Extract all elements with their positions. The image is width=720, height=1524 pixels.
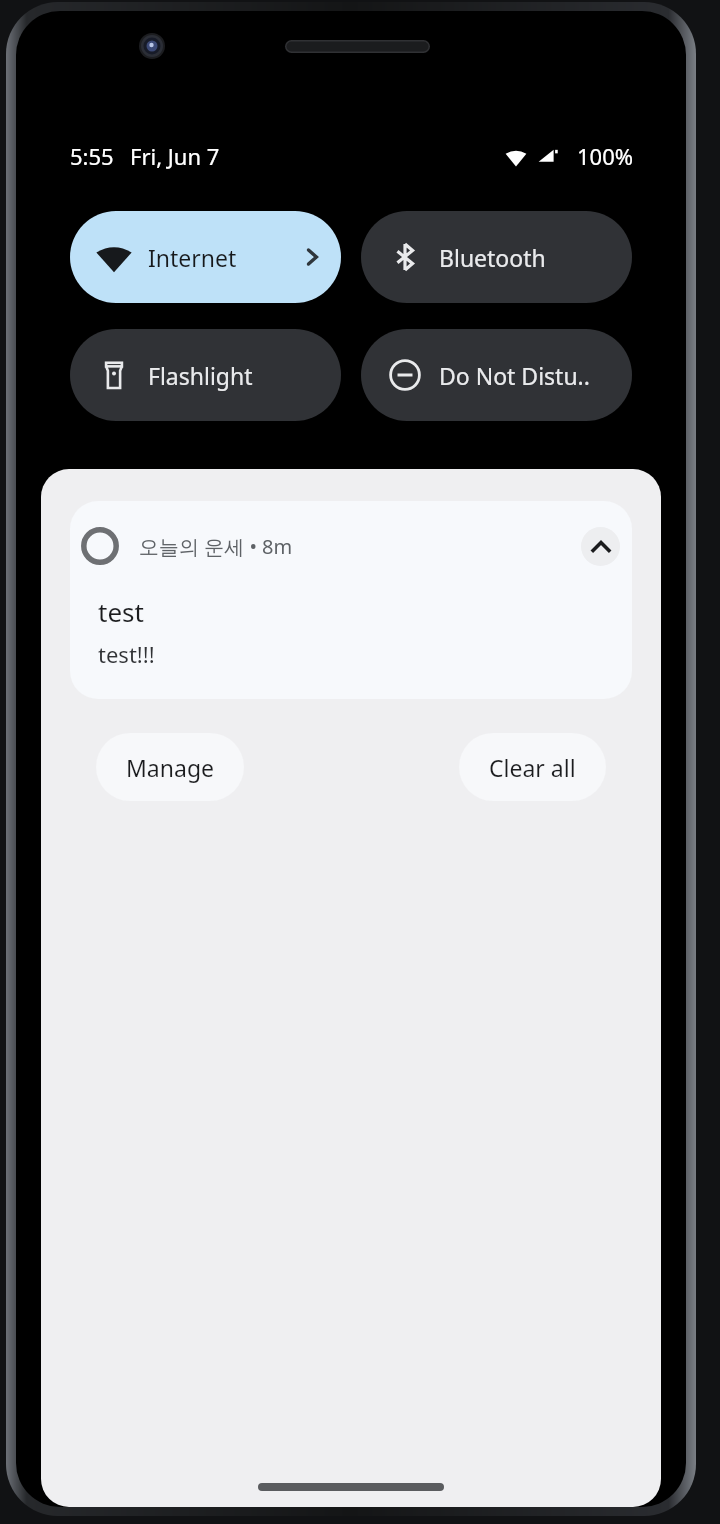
button[interactable]: Internet <box>70 211 341 303</box>
button[interactable]: Manage <box>96 733 244 801</box>
staticText: 오늘의 운세 • 8m <box>139 533 293 560</box>
staticText: Fri, Jun 7 <box>130 141 220 171</box>
staticText: Manage <box>126 752 214 783</box>
staticText: test <box>98 594 144 629</box>
button[interactable]: 오늘의 운세 • 8m <box>70 501 632 699</box>
button[interactable]: Do Not Distu.. <box>361 329 632 421</box>
staticText: test!!! <box>98 639 155 669</box>
staticText: Flashlight <box>148 360 253 391</box>
staticText: 100% <box>577 141 634 171</box>
staticText: Bluetooth <box>439 242 546 273</box>
staticText: Clear all <box>489 752 576 783</box>
button[interactable]: Collapse notification <box>581 527 620 566</box>
button[interactable]: Flashlight <box>70 329 341 421</box>
staticText: Do Not Distu.. <box>439 360 590 391</box>
staticText: Internet <box>148 242 237 273</box>
button[interactable]: Bluetooth <box>361 211 632 303</box>
staticText: 5:55 <box>70 141 114 171</box>
button[interactable]: Clear all <box>459 733 606 801</box>
